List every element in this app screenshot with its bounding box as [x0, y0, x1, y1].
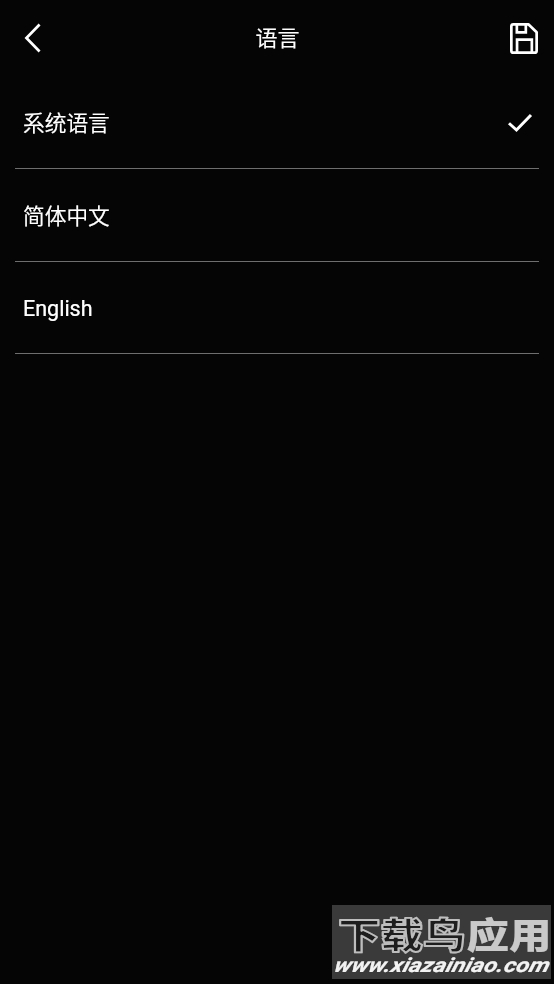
button[interactable]: Back [5, 10, 61, 66]
staticText: 语言 [255, 20, 300, 52]
button[interactable]: 简体中文 [0, 169, 554, 261]
button[interactable]: 系统语言 [0, 76, 554, 168]
button[interactable]: English [0, 262, 554, 353]
staticText: English [23, 296, 93, 321]
staticText: www.xiazainiao.com [333, 954, 548, 978]
staticText: 应用 [467, 907, 553, 959]
staticText: 下载鸟 [338, 907, 467, 959]
staticText: 简体中文 [23, 199, 110, 230]
button[interactable]: Save [496, 10, 552, 66]
staticText: 下载鸟 [338, 907, 467, 959]
staticText: 系统语言 [23, 106, 110, 137]
